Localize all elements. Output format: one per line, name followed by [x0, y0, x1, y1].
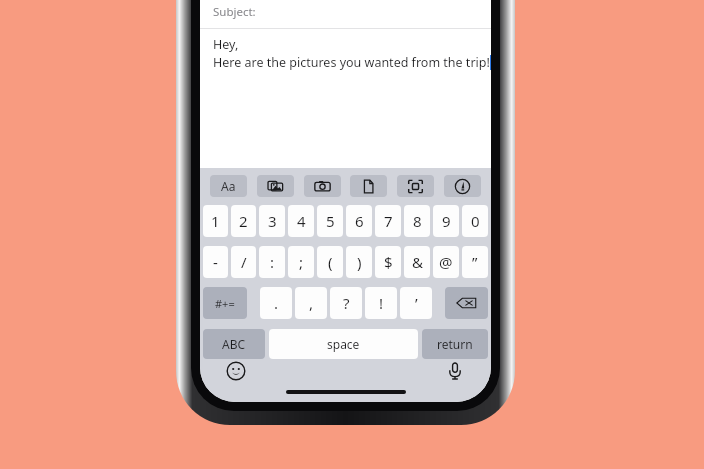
staticText: 5 — [326, 211, 335, 231]
staticText: 9 — [442, 211, 451, 231]
button[interactable]: Markup — [444, 175, 481, 197]
staticText: #+= — [215, 296, 235, 311]
staticText: Hey, — [213, 36, 239, 53]
button[interactable]: space — [269, 329, 418, 359]
staticText: - — [213, 252, 218, 272]
staticText: ’ — [415, 293, 418, 313]
button[interactable]: 6 — [346, 205, 372, 237]
button[interactable]: 4 — [288, 205, 314, 237]
button[interactable]: 2 — [231, 205, 256, 237]
button[interactable]: ) — [346, 246, 372, 278]
staticText: . — [274, 293, 279, 313]
button[interactable]: ; — [288, 246, 314, 278]
button[interactable]: Document — [350, 175, 387, 197]
staticText: / — [241, 252, 247, 272]
staticText: ? — [343, 293, 350, 313]
button[interactable]: 3 — [259, 205, 285, 237]
button[interactable]: . — [260, 287, 292, 319]
button[interactable]: Text format — [210, 175, 247, 197]
button[interactable]: 9 — [433, 205, 459, 237]
staticText: ( — [328, 252, 333, 272]
staticText: 8 — [413, 211, 422, 231]
staticText: 1 — [211, 211, 220, 231]
button[interactable]: - — [203, 246, 228, 278]
staticText: : — [270, 252, 275, 272]
button[interactable]: ’ — [400, 287, 432, 319]
staticText: @ — [439, 252, 453, 272]
staticText: 6 — [355, 211, 364, 231]
staticText: 0 — [471, 211, 480, 231]
button[interactable]: 0 — [462, 205, 488, 237]
button[interactable]: Photos — [257, 175, 294, 197]
button[interactable]: $ — [375, 246, 401, 278]
button[interactable]: Emoji keyboard — [226, 361, 246, 381]
staticText: ; — [299, 252, 304, 272]
staticText: space — [327, 336, 360, 352]
button[interactable]: ( — [317, 246, 343, 278]
button[interactable]: Delete — [445, 287, 488, 319]
staticText: ” — [472, 252, 478, 272]
button[interactable]: , — [295, 287, 327, 319]
button[interactable]: 8 — [404, 205, 430, 237]
button[interactable]: ABC — [203, 329, 265, 359]
staticText: 3 — [268, 211, 277, 231]
staticText: $ — [384, 252, 393, 272]
staticText: 4 — [297, 211, 306, 231]
staticText: , — [309, 293, 314, 313]
staticText: 7 — [384, 211, 393, 231]
button[interactable]: : — [259, 246, 285, 278]
staticText: return — [437, 336, 473, 352]
button[interactable]: / — [231, 246, 256, 278]
staticText: Aa — [221, 178, 236, 194]
staticText: Subject: — [213, 4, 256, 20]
button[interactable]: 5 — [317, 205, 343, 237]
button[interactable]: & — [404, 246, 430, 278]
button[interactable]: #+= — [203, 287, 247, 319]
button[interactable]: ! — [365, 287, 397, 319]
button[interactable]: @ — [433, 246, 459, 278]
staticText: & — [412, 252, 423, 272]
button[interactable]: return — [422, 329, 488, 359]
button[interactable]: ” — [462, 246, 488, 278]
staticText: ! — [379, 293, 384, 313]
staticText: 2 — [239, 211, 248, 231]
button[interactable]: 1 — [203, 205, 228, 237]
staticText: ABC — [222, 336, 246, 352]
staticText: Here are the pictures you wanted from th… — [213, 54, 490, 71]
button[interactable]: Scan document — [397, 175, 434, 197]
button[interactable]: Camera — [304, 175, 341, 197]
staticText: ) — [357, 252, 362, 272]
button[interactable]: Dictation — [445, 361, 465, 381]
button[interactable]: ? — [330, 287, 362, 319]
button[interactable]: 7 — [375, 205, 401, 237]
